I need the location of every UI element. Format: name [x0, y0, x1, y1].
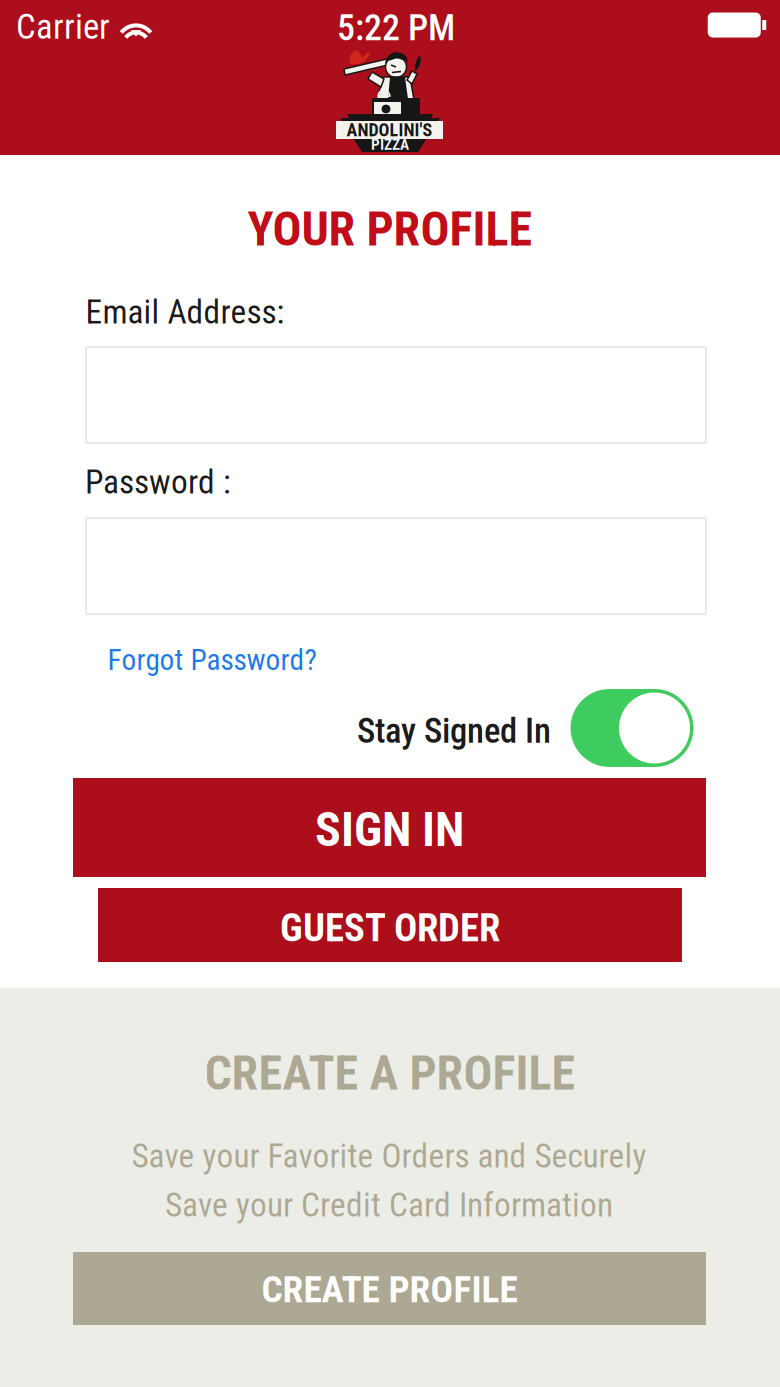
staticText: Save your Favorite Orders and Securely [131, 1136, 646, 1176]
button[interactable]: GUEST ORDER [98, 888, 682, 962]
staticText: PIZZA [371, 135, 409, 153]
staticText: ANDOLINI'S [346, 119, 432, 141]
staticText: CREATE A PROFILE [204, 1045, 575, 1101]
staticText: YOUR PROFILE [247, 201, 532, 257]
staticText: Save your Credit Card Information [165, 1185, 613, 1225]
staticText: 5:22 PM [337, 7, 455, 49]
staticText: Email Address: [85, 292, 284, 332]
staticText: Stay Signed In [357, 711, 551, 751]
staticText: Forgot Password? [107, 643, 316, 677]
staticText: Password : [85, 462, 231, 502]
button[interactable]: SIGN IN [73, 778, 706, 877]
staticText: SIGN IN [315, 801, 464, 858]
staticText: CREATE PROFILE [261, 1268, 517, 1311]
button[interactable]: Stay Signed In [570, 689, 693, 767]
staticText: GUEST ORDER [280, 905, 500, 951]
staticText: Carrier [16, 7, 110, 47]
button[interactable]: CREATE PROFILE [73, 1252, 706, 1325]
button[interactable]: Forgot Password? [107, 643, 316, 677]
